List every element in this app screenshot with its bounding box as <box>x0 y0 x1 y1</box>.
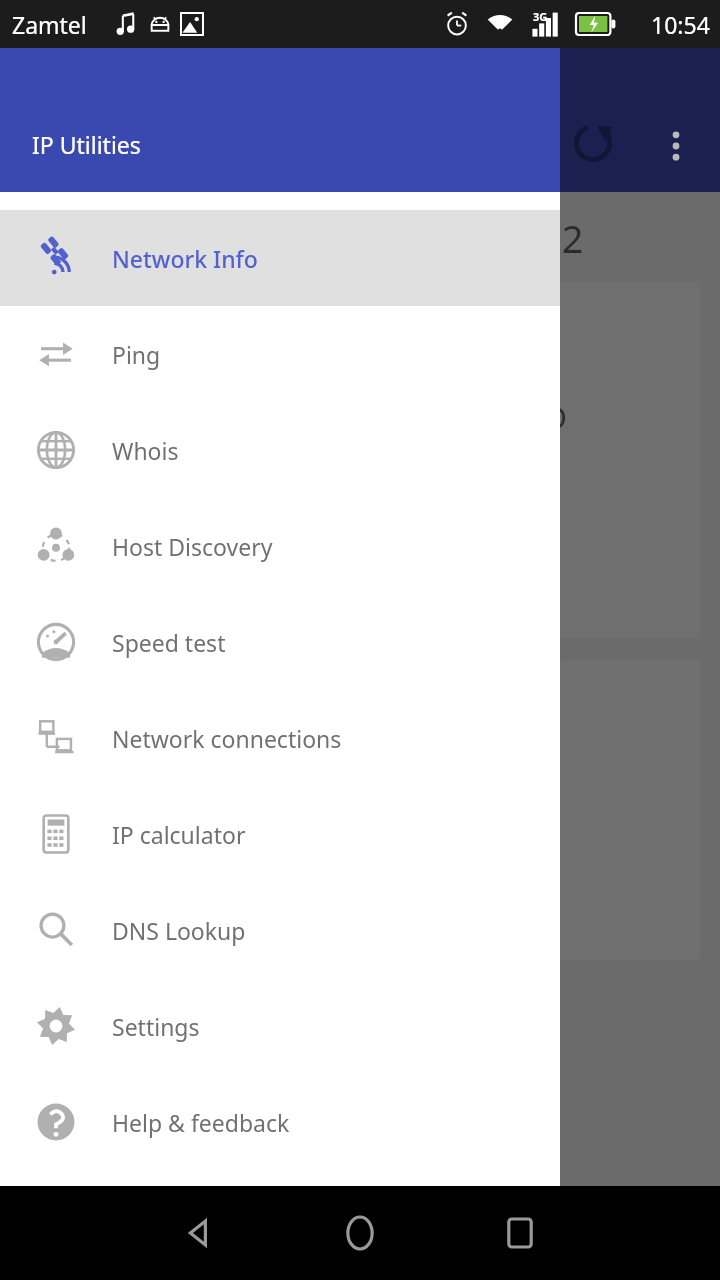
staticText: 10:54 <box>651 9 710 40</box>
staticText: D <box>545 397 567 438</box>
button[interactable]: DNS Lookup <box>0 882 560 978</box>
staticText: Whois <box>112 435 179 466</box>
button[interactable]: Host Discovery <box>0 498 560 594</box>
staticText: Zamtel <box>12 9 87 40</box>
button[interactable]: Network Info <box>0 210 560 306</box>
button[interactable]: Back <box>160 1193 240 1273</box>
staticText: Network connections <box>112 723 342 754</box>
staticText: DNS Lookup <box>112 915 246 946</box>
button[interactable]: Home <box>320 1193 400 1273</box>
button[interactable]: Recents <box>480 1193 560 1273</box>
staticText: IP Utilities <box>32 129 141 160</box>
staticText: Ping <box>112 339 161 370</box>
button[interactable]: Settings <box>0 978 560 1074</box>
button[interactable]: Help & feedback <box>0 1074 560 1170</box>
staticText: IP calculator <box>112 819 246 850</box>
staticText: Host Discovery <box>112 531 273 562</box>
staticText: 52 <box>540 212 584 264</box>
staticText: Network Info <box>112 243 258 274</box>
button[interactable]: Ping <box>0 306 560 402</box>
staticText: Speed test <box>112 627 226 658</box>
button[interactable]: Whois <box>0 402 560 498</box>
staticText: 3G <box>533 9 548 24</box>
button[interactable]: IP calculator <box>0 786 560 882</box>
button[interactable]: Speed test <box>0 594 560 690</box>
staticText: Settings <box>112 1011 200 1042</box>
staticText: Help & feedback <box>112 1107 290 1138</box>
button[interactable]: Network connections <box>0 690 560 786</box>
